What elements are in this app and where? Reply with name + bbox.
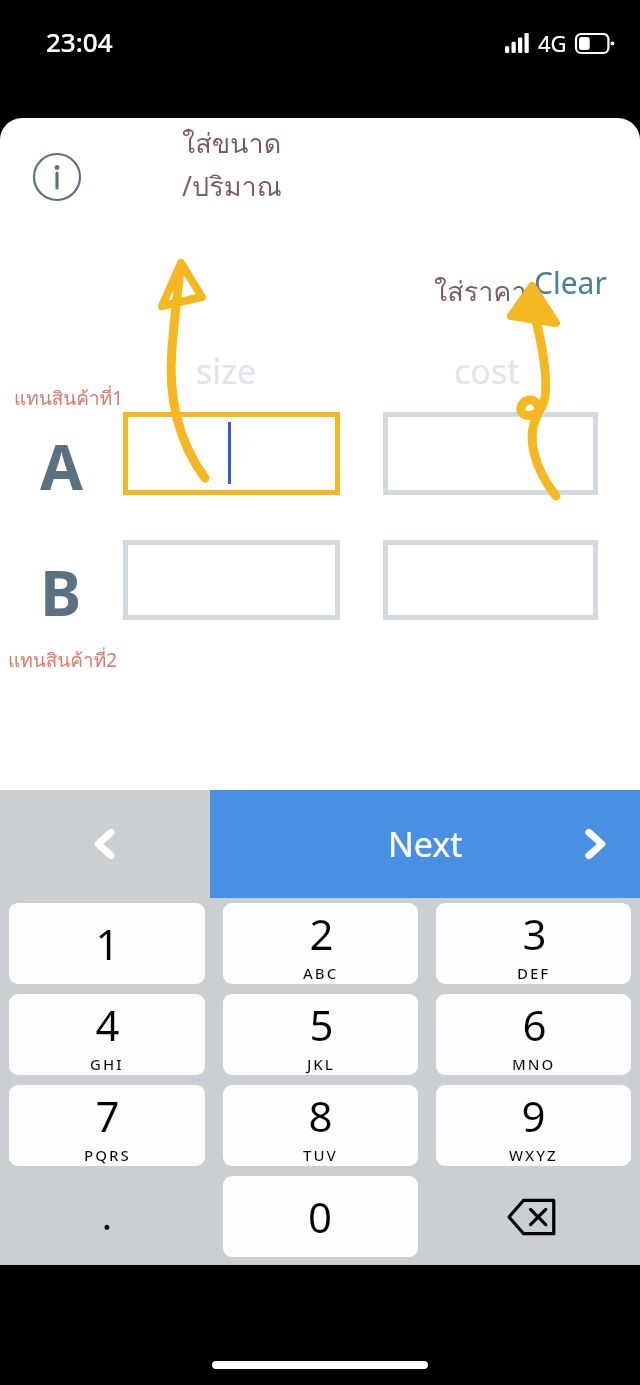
button[interactable] bbox=[123, 412, 340, 495]
staticText: 8 bbox=[308, 1087, 333, 1144]
staticText: 9 bbox=[521, 1087, 546, 1144]
staticText: 7 bbox=[95, 1087, 120, 1144]
button[interactable] bbox=[383, 540, 598, 620]
button[interactable]: . bbox=[0, 1171, 214, 1262]
button[interactable]: 5 bbox=[223, 994, 418, 1075]
button[interactable]: Next bbox=[210, 790, 640, 898]
button[interactable]: Previous field bbox=[0, 790, 210, 898]
staticText: ใส่ขนาด bbox=[182, 122, 282, 165]
staticText: แทนสินค้าที่2 bbox=[8, 645, 118, 675]
staticText: 0 bbox=[308, 1188, 333, 1245]
staticText: /ปริมาณ bbox=[182, 165, 282, 208]
staticText: PQRS bbox=[84, 1145, 131, 1165]
button[interactable]: Backspace bbox=[427, 1171, 640, 1262]
staticText: 5 bbox=[309, 996, 334, 1053]
button[interactable]: Clear bbox=[530, 258, 611, 307]
staticText: Clear bbox=[534, 262, 607, 303]
staticText: DEF bbox=[517, 963, 551, 983]
staticText: cost bbox=[454, 348, 520, 394]
staticText: . bbox=[102, 1192, 112, 1241]
staticText: 6 bbox=[522, 996, 547, 1053]
button[interactable] bbox=[123, 540, 340, 620]
staticText: size bbox=[196, 348, 257, 394]
button[interactable]: 0 bbox=[223, 1176, 418, 1257]
staticText: B bbox=[40, 550, 82, 634]
button[interactable]: Information bbox=[32, 152, 82, 202]
staticText: ABC bbox=[303, 963, 339, 983]
staticText: 3 bbox=[522, 905, 547, 962]
staticText: JKL bbox=[307, 1054, 335, 1074]
button[interactable] bbox=[383, 412, 598, 495]
staticText: WXYZ bbox=[509, 1145, 558, 1165]
staticText: 23:04 bbox=[46, 24, 113, 59]
button[interactable]: 7 bbox=[9, 1085, 205, 1166]
button[interactable]: 9 bbox=[436, 1085, 631, 1166]
staticText: แทนสินค้าที่1 bbox=[14, 383, 124, 413]
staticText: TUV bbox=[303, 1145, 338, 1165]
staticText: A bbox=[40, 424, 83, 508]
button[interactable]: 2 bbox=[223, 903, 418, 984]
button[interactable]: 1 bbox=[9, 903, 205, 984]
staticText: 1 bbox=[95, 915, 120, 972]
button[interactable]: 4 bbox=[9, 994, 205, 1075]
staticText: 4G bbox=[538, 28, 567, 58]
staticText: Next bbox=[388, 821, 463, 867]
staticText: MNO bbox=[512, 1054, 556, 1074]
staticText: GHI bbox=[90, 1054, 124, 1074]
button[interactable]: 8 bbox=[223, 1085, 418, 1166]
button[interactable]: 6 bbox=[436, 994, 631, 1075]
button[interactable]: 3 bbox=[436, 903, 631, 984]
staticText: ใส่ราคา bbox=[434, 270, 527, 313]
staticText: 4 bbox=[95, 996, 120, 1053]
staticText: 2 bbox=[309, 905, 334, 962]
